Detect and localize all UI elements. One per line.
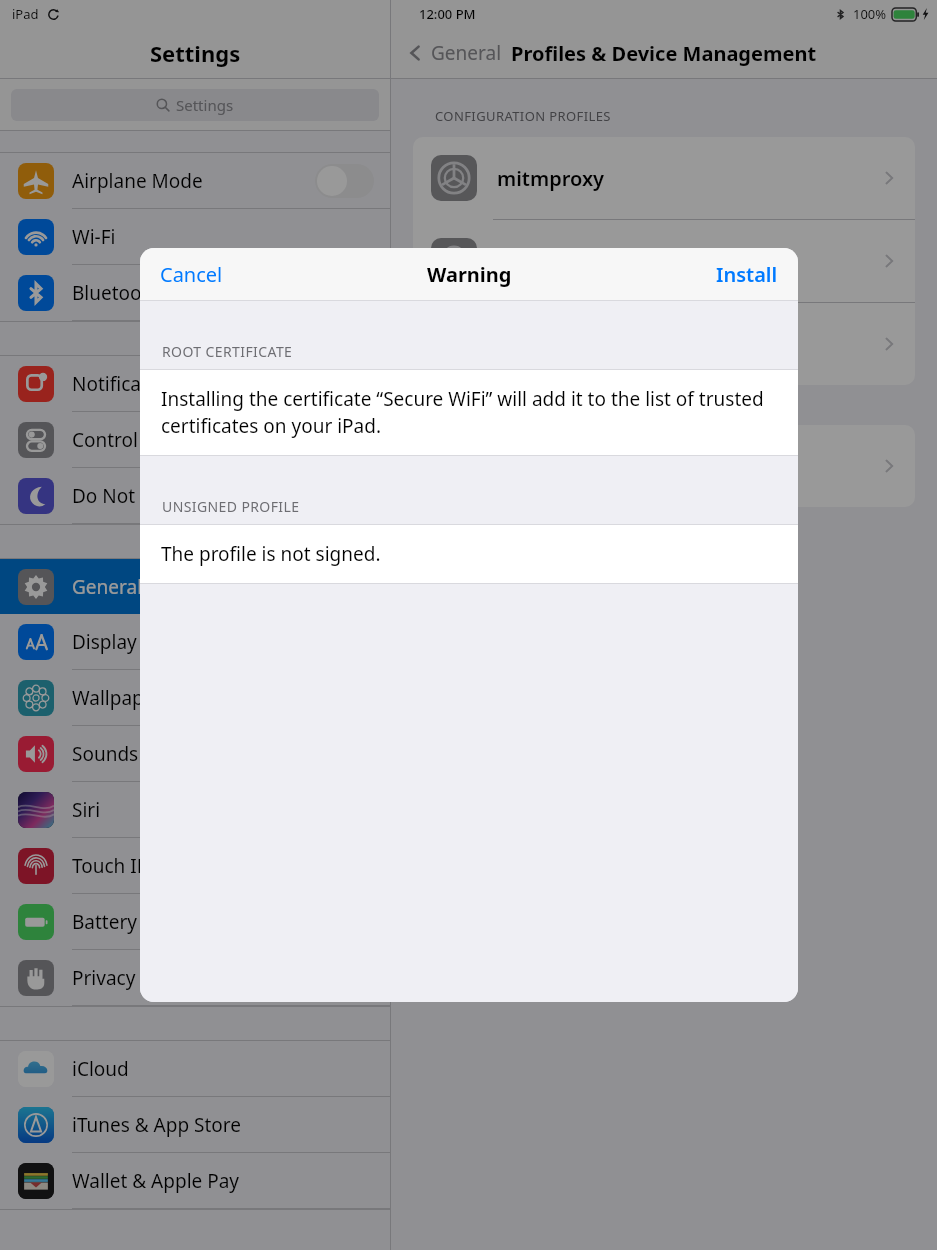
button[interactable]: Battery bbox=[0, 894, 390, 949]
staticText: Wallet & Apple Pay bbox=[72, 1168, 240, 1194]
staticText: Wi-Fi bbox=[72, 224, 116, 250]
staticText: General bbox=[431, 40, 502, 66]
staticText: Airplane Mode bbox=[72, 168, 203, 194]
button[interactable]: Secure WiFi bbox=[413, 220, 915, 302]
button[interactable]: Bluetooth bbox=[0, 265, 390, 320]
staticText: 12:00 PM bbox=[419, 5, 476, 23]
button[interactable]: Airplane Mode bbox=[0, 153, 390, 208]
button[interactable]: Device Management bbox=[413, 425, 915, 507]
staticText: The profile is not signed. bbox=[161, 541, 381, 567]
staticText: iPad bbox=[12, 5, 39, 23]
staticText: CONFIGURATION PROFILES bbox=[435, 107, 611, 125]
staticText: 100% bbox=[853, 5, 887, 23]
button[interactable]: iTunes & App Store bbox=[0, 1097, 390, 1152]
staticText: Display & Brightness bbox=[72, 629, 257, 655]
staticText: General bbox=[72, 574, 143, 600]
button[interactable]: Sounds bbox=[0, 726, 390, 781]
button[interactable]: Cancel bbox=[140, 248, 243, 300]
button[interactable]: Control Center bbox=[0, 412, 390, 467]
staticText: Bluetooth bbox=[72, 280, 161, 306]
button[interactable]: Wi-Fi bbox=[0, 209, 390, 264]
button[interactable]: General bbox=[405, 40, 502, 66]
button[interactable]: iCloud bbox=[0, 1041, 390, 1096]
staticText: Settings bbox=[176, 95, 234, 115]
button[interactable]: Touch ID & Passcode bbox=[0, 838, 390, 893]
button[interactable]: Privacy bbox=[0, 950, 390, 1005]
staticText: mitmproxy bbox=[497, 165, 605, 192]
staticText: Warning bbox=[427, 261, 512, 288]
button[interactable]: Notifications bbox=[0, 356, 390, 411]
staticText: Settings bbox=[150, 38, 241, 68]
staticText: Install bbox=[716, 261, 778, 288]
button[interactable]: Acme Manufacturers Ltd. bbox=[413, 303, 915, 385]
button[interactable]: Install bbox=[696, 248, 798, 300]
button[interactable]: Siri bbox=[0, 782, 390, 837]
staticText: Touch ID & Passcode bbox=[72, 853, 258, 879]
staticText: Installing the certificate “Secure WiFi”… bbox=[161, 386, 777, 439]
staticText: Secure WiFi bbox=[497, 248, 609, 275]
staticText: iCloud bbox=[72, 1056, 129, 1082]
staticText: UNSIGNED PROFILE bbox=[162, 497, 300, 516]
button[interactable]: Display & Brightness bbox=[0, 614, 390, 669]
button[interactable]: General bbox=[0, 559, 390, 614]
button[interactable]: Wallet & Apple Pay bbox=[0, 1153, 390, 1208]
staticText: Device Management bbox=[497, 453, 698, 480]
staticText: Do Not Disturb bbox=[72, 483, 207, 509]
staticText: ROOT CERTIFICATE bbox=[162, 342, 293, 361]
staticText: Cancel bbox=[160, 261, 223, 288]
button[interactable]: Airplane Mode toggle bbox=[315, 164, 374, 198]
staticText: Profiles & Device Management bbox=[511, 40, 817, 67]
button[interactable]: Wallpaper bbox=[0, 670, 390, 725]
staticText: Wallpaper bbox=[72, 685, 163, 711]
staticText: iTunes & App Store bbox=[72, 1112, 242, 1138]
staticText: Siri bbox=[72, 797, 101, 823]
staticText: Sounds bbox=[72, 741, 139, 767]
staticText: Control Center bbox=[72, 427, 203, 453]
staticText: Notifications bbox=[72, 371, 186, 397]
staticText: Privacy bbox=[72, 965, 136, 991]
button[interactable]: Settings bbox=[11, 89, 379, 121]
button[interactable]: mitmproxy bbox=[413, 137, 915, 219]
button[interactable]: Do Not Disturb bbox=[0, 468, 390, 523]
staticText: Battery bbox=[72, 909, 137, 935]
